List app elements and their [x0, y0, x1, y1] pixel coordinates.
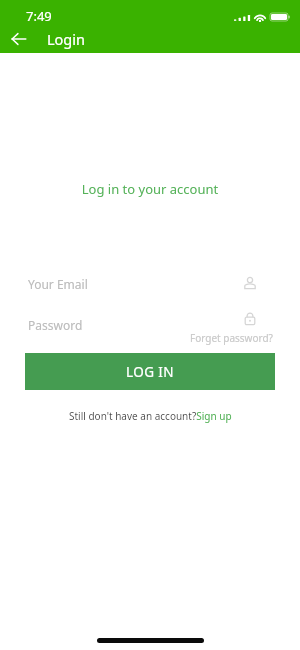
button[interactable]: Email [242, 275, 258, 291]
button[interactable]: Password [242, 310, 258, 326]
button[interactable]: LOG IN [25, 353, 275, 390]
button[interactable]: Forget password? [190, 331, 273, 345]
button[interactable]: Back [6, 26, 32, 52]
button[interactable]: Your Email [28, 276, 88, 292]
staticText: Log in to your account [0, 180, 300, 198]
staticText: LOG IN [126, 363, 174, 381]
staticText: Login [47, 29, 85, 49]
staticText: 7:49 [26, 7, 52, 25]
button[interactable]: Still don't have an account?Sign up [69, 409, 232, 423]
button[interactable]: Password [28, 317, 83, 333]
